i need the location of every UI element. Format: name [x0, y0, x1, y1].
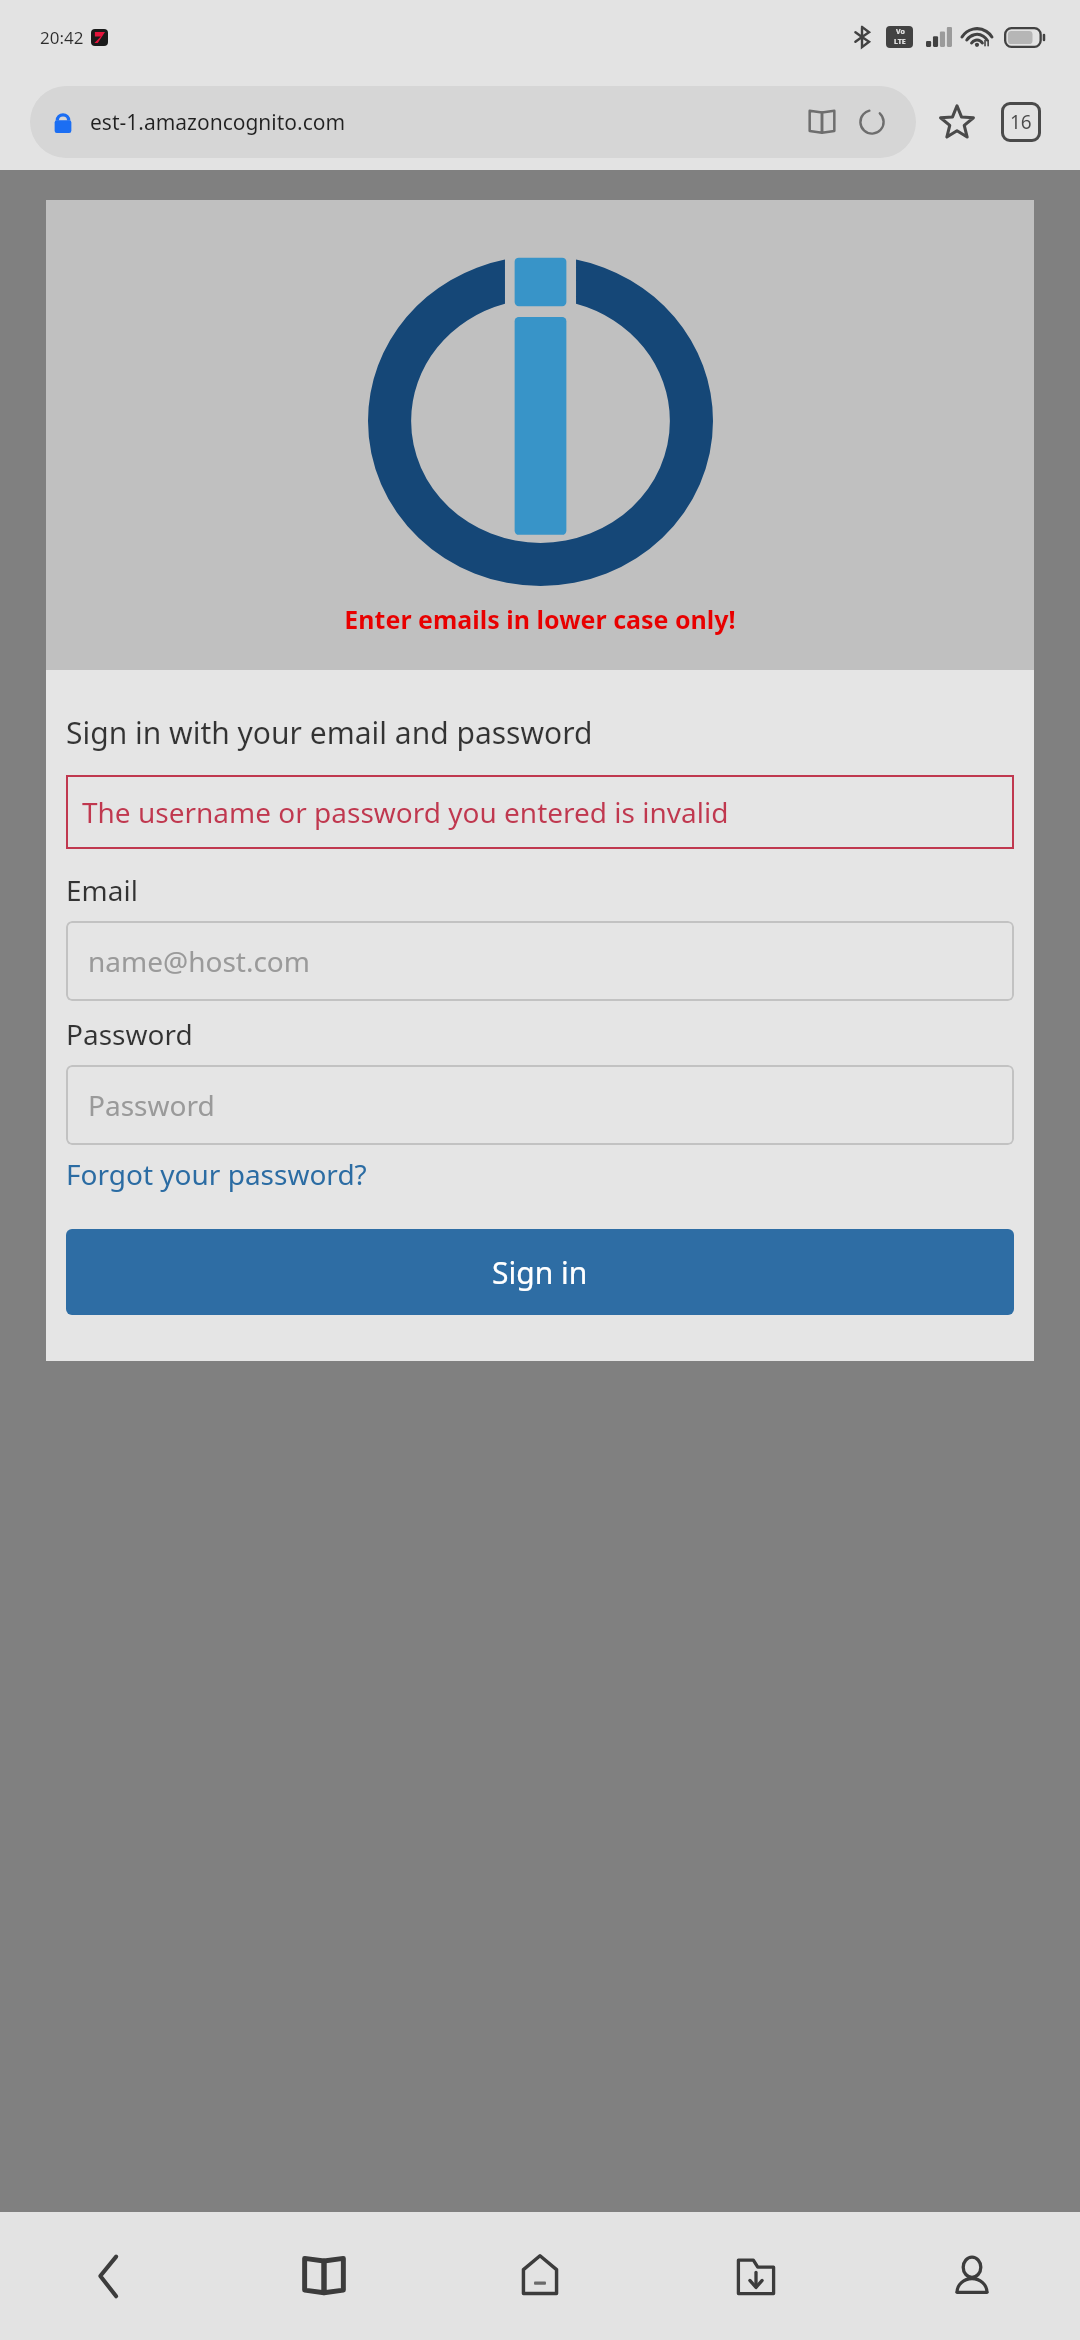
button[interactable]: Reload page — [850, 100, 894, 144]
button[interactable]: Back — [0, 2212, 216, 2340]
button[interactable]: Password — [66, 1065, 1014, 1145]
button[interactable]: Home — [432, 2212, 648, 2340]
staticText: Password — [88, 1086, 215, 1124]
button[interactable]: Bookmarks — [216, 2212, 432, 2340]
staticText: Sign in — [492, 1252, 588, 1293]
staticText: 16 — [1010, 109, 1032, 135]
button[interactable]: Profile — [864, 2212, 1080, 2340]
staticText: LTE — [894, 37, 906, 47]
staticText: Sign in with your email and password — [66, 712, 593, 753]
button[interactable]: Reader mode — [800, 100, 844, 144]
staticText: name@host.com — [88, 942, 310, 980]
button[interactable]: est-1.amazoncognito.com — [30, 86, 916, 158]
button[interactable]: Sign in — [66, 1229, 1014, 1315]
staticText: 20:42 — [40, 26, 84, 49]
staticText: Enter emails in lower case only! — [344, 602, 736, 636]
staticText: Password — [66, 1015, 193, 1053]
button[interactable]: Forgot your password? — [66, 1155, 367, 1193]
button[interactable]: Downloads — [648, 2212, 864, 2340]
button[interactable]: name@host.com — [66, 921, 1014, 1001]
staticText: The username or password you entered is … — [82, 793, 729, 831]
button[interactable]: Bookmark — [928, 93, 986, 151]
staticText: Email — [66, 871, 138, 909]
staticText: Vo — [896, 27, 905, 37]
staticText: Forgot your password? — [66, 1155, 367, 1193]
staticText: est-1.amazoncognito.com — [90, 108, 346, 137]
button[interactable]: Tabs, 16 open — [992, 93, 1050, 151]
